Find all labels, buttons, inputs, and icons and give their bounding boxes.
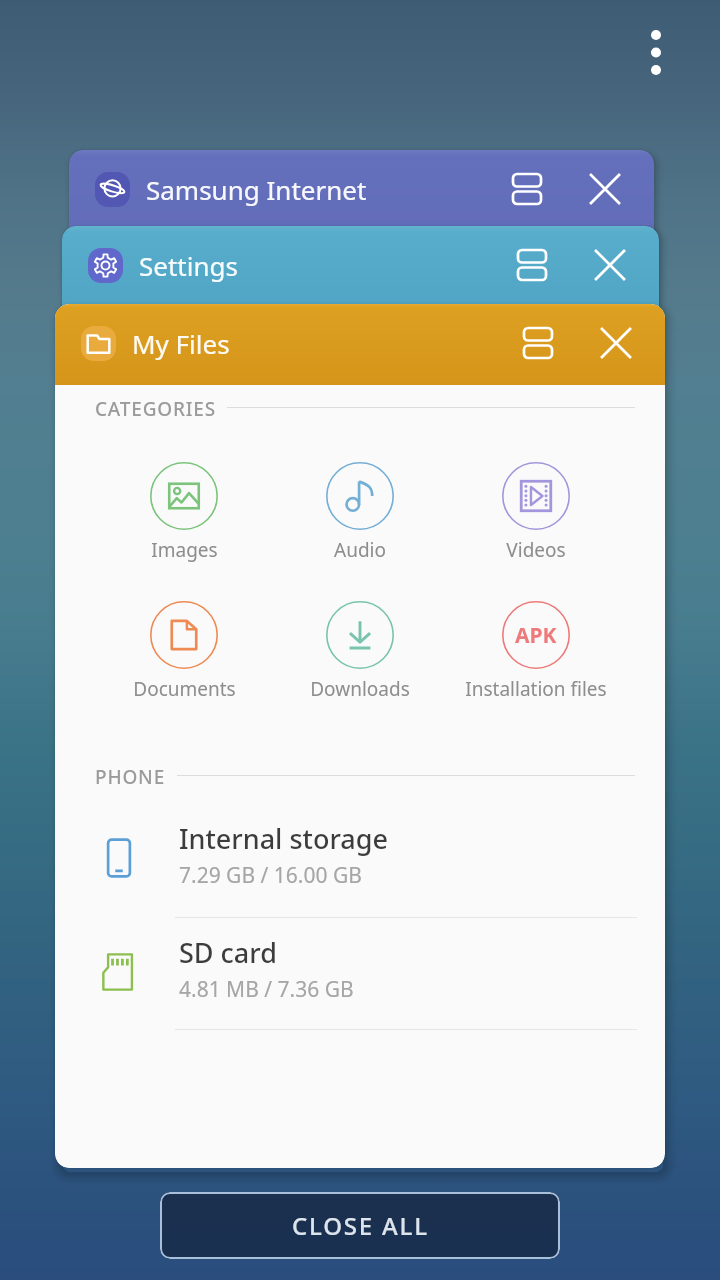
button[interactable]: Images <box>96 462 272 563</box>
button[interactable]: Open in split screen view <box>506 239 558 291</box>
button[interactable]: Close app <box>584 239 636 291</box>
button[interactable]: APK <box>448 601 624 702</box>
button[interactable]: My Files <box>55 304 665 1168</box>
staticText: Audio <box>334 537 386 563</box>
button[interactable]: Settings <box>62 226 659 386</box>
staticText: Downloads <box>310 676 410 702</box>
staticText: CATEGORIES <box>95 396 216 418</box>
button[interactable]: Audio <box>272 462 448 563</box>
button[interactable]: Close app <box>579 163 631 215</box>
staticText: CLOSE ALL <box>292 1209 429 1242</box>
staticText: My Files <box>132 326 230 361</box>
button[interactable]: Samsung Internet <box>69 150 654 310</box>
button[interactable]: My Files <box>55 304 665 385</box>
staticText: 4.81 MB / 7.36 GB <box>179 975 354 1004</box>
staticText: Settings <box>139 248 238 283</box>
button[interactable]: More options <box>626 21 686 81</box>
button[interactable]: Videos <box>448 462 624 563</box>
button[interactable]: Close app <box>590 317 642 369</box>
button[interactable]: Downloads <box>272 601 448 702</box>
staticText: Samsung Internet <box>146 172 367 207</box>
staticText: Installation files <box>465 676 607 702</box>
button[interactable]: Open in split screen view <box>501 163 553 215</box>
staticText: 7.29 GB / 16.00 GB <box>179 861 362 890</box>
staticText: Internal storage <box>179 820 388 857</box>
staticText: PHONE <box>95 764 166 786</box>
button[interactable]: Internal storage <box>55 813 665 897</box>
staticText: SD card <box>179 934 277 971</box>
staticText: Images <box>151 537 218 563</box>
staticText: APK <box>515 621 557 650</box>
button[interactable]: CLOSE ALL <box>160 1192 560 1259</box>
staticText: Videos <box>506 537 566 563</box>
button[interactable]: Open in split screen view <box>512 317 564 369</box>
staticText: Documents <box>133 676 236 702</box>
button[interactable]: SD card <box>55 927 665 1011</box>
button[interactable]: Documents <box>96 601 272 702</box>
